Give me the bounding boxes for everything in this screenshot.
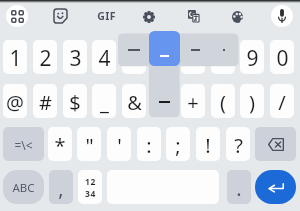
button[interactable]: Enter [255, 170, 296, 204]
button[interactable] [209, 33, 239, 66]
staticText: 6 [158, 44, 171, 73]
staticText: 9 [246, 44, 259, 73]
button[interactable]: 3 [63, 40, 87, 74]
staticText: ! [205, 132, 211, 159]
staticText: & [127, 89, 142, 116]
button[interactable]: ? [226, 127, 250, 161]
button[interactable]: ) [240, 84, 264, 118]
button[interactable]: Backspace [255, 127, 296, 161]
button[interactable]: Voice input [271, 5, 293, 27]
staticText: , [58, 175, 64, 202]
button[interactable]: $ [63, 84, 87, 118]
staticText: =\< [14, 137, 33, 153]
staticText: GIF [97, 9, 116, 23]
button[interactable] [119, 33, 149, 66]
staticText: / [278, 89, 286, 116]
button[interactable]: GIF [92, 6, 120, 26]
button[interactable]: " [77, 127, 101, 161]
button[interactable]: ; [166, 127, 190, 161]
button[interactable]: 1 [3, 40, 27, 74]
button[interactable]: Switch keyboard [6, 5, 28, 27]
button[interactable]: ! [196, 127, 220, 161]
staticText: $ [69, 89, 81, 116]
button[interactable]: Numbers [78, 170, 102, 204]
button[interactable]: Settings [135, 3, 163, 31]
staticText: 5 [128, 44, 141, 73]
staticText: + [187, 89, 199, 116]
staticText: 1 [9, 44, 22, 73]
button[interactable]: # [33, 84, 57, 118]
button[interactable] [180, 33, 210, 66]
staticText: 4 [98, 44, 111, 73]
button[interactable]: @ [3, 84, 27, 118]
button[interactable]: 4 [92, 40, 116, 74]
staticText: ? [234, 132, 243, 159]
button[interactable]: ' [107, 127, 131, 161]
button[interactable] [149, 84, 180, 118]
staticText: ABC [12, 180, 35, 196]
staticText: 0 [276, 44, 289, 73]
staticText: _ [100, 89, 109, 116]
button[interactable]: ( [211, 84, 235, 118]
staticText: 3 [69, 44, 82, 73]
staticText: # [39, 89, 52, 116]
button[interactable]: : [137, 127, 161, 161]
staticText: : [146, 132, 152, 159]
button[interactable]: _ [92, 84, 116, 118]
staticText: . [236, 175, 242, 202]
button[interactable]: 9 [240, 40, 264, 74]
button[interactable]: Stickers [46, 2, 74, 30]
button[interactable]: 0 [270, 40, 294, 74]
button[interactable]: Switch to more symbols [3, 127, 44, 161]
button[interactable]: Translate [179, 2, 207, 30]
button[interactable]: Switch to letters [3, 170, 44, 204]
staticText: 8 [217, 44, 230, 73]
staticText: 7 [187, 44, 200, 73]
button[interactable]: 2 [33, 40, 57, 74]
staticText: ' [117, 132, 122, 159]
button[interactable]: 8 [211, 40, 235, 74]
button[interactable]: 5 [122, 40, 146, 74]
staticText: ) [249, 89, 255, 116]
button[interactable]: 7 [181, 40, 205, 74]
button[interactable]: * [48, 127, 72, 161]
staticText: * [54, 132, 66, 159]
staticText: ; [175, 132, 181, 159]
button[interactable]: Theme [223, 3, 251, 31]
staticText: 12 34 [85, 176, 96, 200]
staticText: ( [220, 89, 226, 116]
button[interactable]: 6 [152, 40, 176, 74]
button[interactable]: . [227, 170, 251, 204]
button[interactable]: / [270, 84, 294, 118]
button[interactable] [149, 31, 180, 66]
staticText: " [85, 132, 94, 159]
button[interactable]: , [49, 170, 73, 204]
button[interactable]: + [181, 84, 205, 118]
staticText: 2 [39, 44, 52, 73]
staticText: @ [6, 89, 24, 116]
button[interactable]: & [122, 84, 146, 118]
